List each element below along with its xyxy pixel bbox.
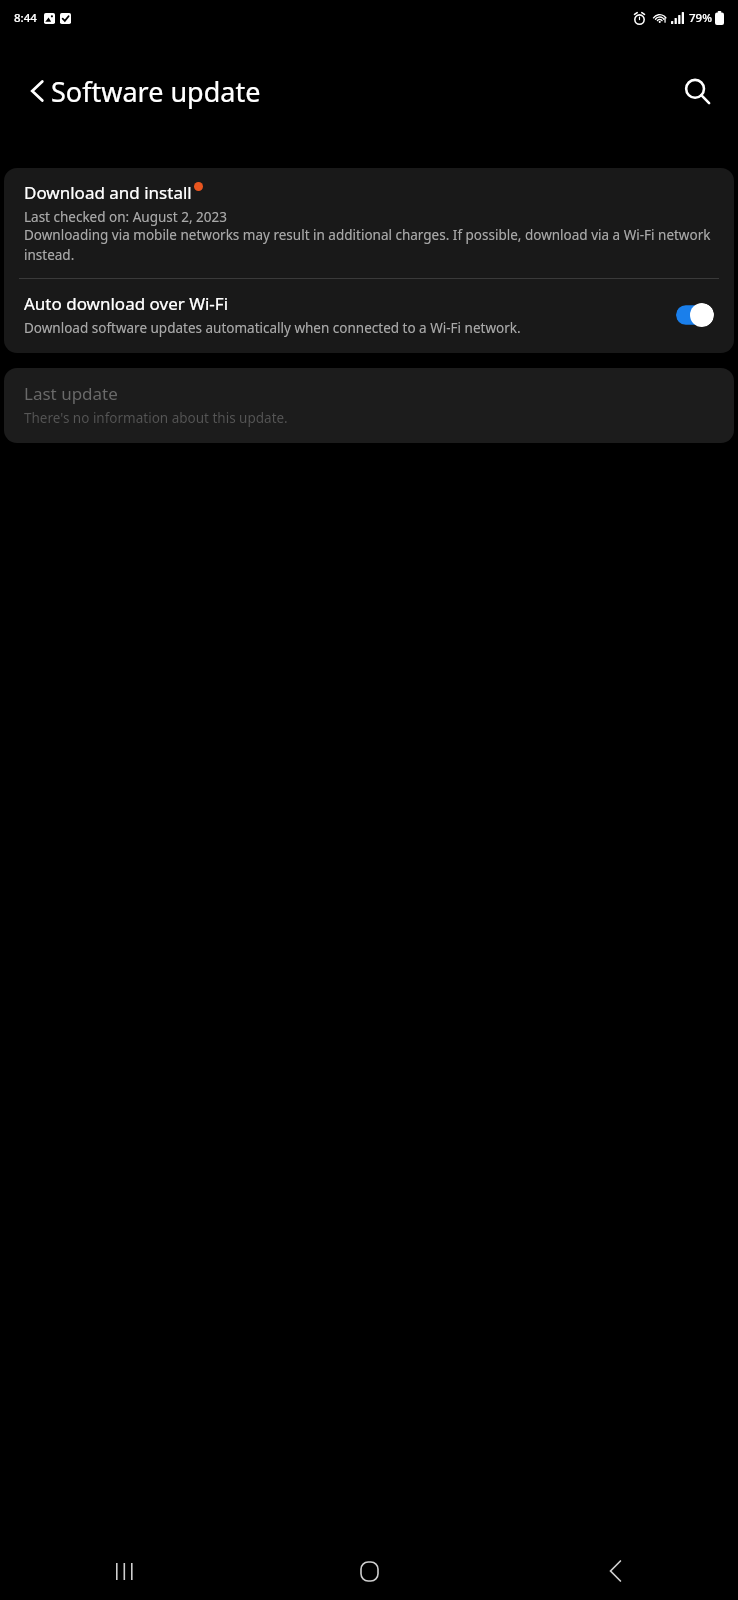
- staticText: Last update: [24, 382, 118, 405]
- button[interactable]: Recents: [0, 1542, 246, 1600]
- staticText: Download software updates automatically …: [24, 319, 521, 337]
- button[interactable]: Auto download over Wi-Fi toggle: [676, 303, 714, 327]
- staticText: Last checked on: August 2, 2023: [24, 208, 227, 226]
- staticText: Auto download over Wi-Fi: [24, 292, 229, 315]
- button[interactable]: Back: [492, 1542, 738, 1600]
- button[interactable]: Download and install: [4, 168, 734, 278]
- button[interactable]: Back: [12, 65, 64, 117]
- staticText: Download and install: [24, 181, 192, 204]
- button[interactable]: Last update: [4, 368, 734, 443]
- staticText: There's no information about this update…: [24, 409, 288, 427]
- staticText: Downloading via mobile networks may resu…: [24, 226, 712, 264]
- button[interactable]: Auto download over Wi-Fi: [4, 279, 734, 353]
- button[interactable]: Search: [670, 64, 724, 118]
- staticText: 8:44: [14, 10, 37, 26]
- staticText: 79%: [689, 10, 712, 26]
- button[interactable]: Home: [246, 1542, 492, 1600]
- staticText: Software update: [51, 73, 261, 110]
